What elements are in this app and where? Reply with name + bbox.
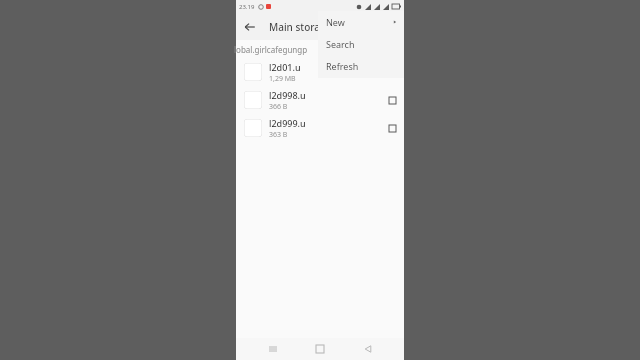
staticText: Refresh	[326, 60, 359, 72]
button[interactable]: Back	[357, 338, 379, 360]
staticText: New	[326, 16, 345, 28]
button[interactable]: Recents	[262, 338, 284, 360]
staticText: Search	[326, 38, 355, 50]
button[interactable]: Select l2d999.u	[236, 114, 404, 142]
staticText: 23.19	[239, 3, 255, 11]
button[interactable]: Back	[236, 13, 263, 40]
button[interactable]: New	[318, 11, 404, 33]
button[interactable]: Select l2d998.u	[244, 91, 262, 109]
button[interactable]: Home	[309, 338, 331, 360]
staticText: 1,29 MB	[269, 74, 296, 84]
staticText: l2d01.u	[269, 61, 301, 73]
button[interactable]: Checkbox	[385, 93, 399, 107]
staticText: l2d998.u	[269, 89, 306, 101]
staticText: 363 B	[269, 130, 288, 140]
button[interactable]: Refresh	[318, 55, 404, 77]
staticText: 366 B	[269, 102, 288, 112]
staticText: lobal.girlcafegungp	[234, 44, 308, 55]
button[interactable]: Search	[318, 33, 404, 55]
staticText: Main storage	[269, 20, 332, 34]
button[interactable]: Select l2d01.u	[244, 63, 262, 81]
button[interactable]: Checkbox	[385, 121, 399, 135]
staticText: l2d999.u	[269, 117, 306, 129]
button[interactable]: Select l2d998.u	[236, 86, 404, 114]
button[interactable]: Select l2d999.u	[244, 119, 262, 137]
button[interactable]: Select l2d01.u	[236, 58, 404, 86]
